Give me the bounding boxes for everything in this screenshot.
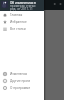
staticText: Главная — [10, 13, 23, 17]
staticText: О программе — [10, 86, 31, 90]
staticText: Избранное — [10, 20, 27, 24]
staticText: примерах статьи — [10, 4, 36, 8]
staticText: ред. от 2017-11 — [10, 7, 33, 11]
button[interactable]: Избранное — [0, 18, 44, 25]
button[interactable]: Главная — [0, 11, 44, 18]
button[interactable]: Изменения — [0, 70, 44, 77]
staticText: Другие проги — [10, 79, 31, 83]
staticText: Об изменениях в — [10, 1, 36, 5]
staticText: Все статьи — [10, 27, 26, 31]
staticText: Изменения — [10, 72, 28, 76]
button[interactable]: О программе — [0, 84, 44, 91]
button[interactable]: Другие проги — [0, 77, 44, 84]
button[interactable]: Об изменениях в — [0, 0, 44, 11]
button[interactable]: Все статьи — [0, 25, 44, 32]
